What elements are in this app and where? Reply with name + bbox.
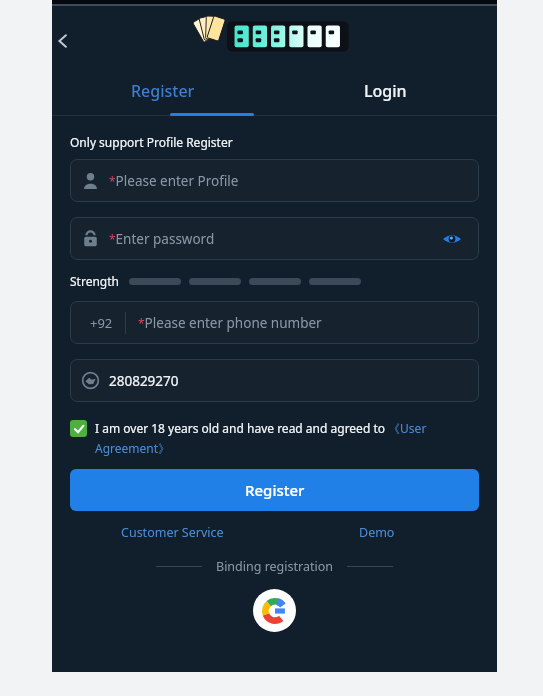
staticText: Customer Service: [121, 524, 224, 541]
staticText: Only support Profile Register: [70, 134, 233, 150]
button[interactable]: Customer Service: [70, 524, 274, 541]
staticText: +92: [90, 314, 113, 332]
button[interactable]: Show password: [437, 224, 467, 254]
staticText: 280829270: [109, 372, 179, 390]
button[interactable]: Back: [48, 26, 78, 56]
button[interactable]: 280829270: [70, 359, 479, 402]
staticText: *Enter password: [109, 230, 215, 248]
staticText: *Please enter phone number: [138, 314, 322, 332]
staticText: I am over 18 years old and have read and…: [95, 420, 479, 456]
button[interactable]: Register: [70, 469, 479, 511]
staticText: Login: [364, 80, 407, 102]
staticText: Register: [245, 480, 305, 500]
button[interactable]: I am over 18 years old and have read and…: [70, 420, 479, 456]
button[interactable]: *Enter password: [70, 217, 479, 260]
button[interactable]: +92: [70, 301, 479, 344]
button[interactable]: Register: [52, 68, 274, 114]
button[interactable]: *Please enter Profile: [70, 159, 479, 202]
button[interactable]: Demo: [274, 524, 479, 541]
staticText: Demo: [359, 524, 395, 541]
staticText: Binding registration: [216, 558, 333, 575]
staticText: Register: [131, 80, 195, 102]
staticText: Strength: [70, 273, 119, 289]
button[interactable]: Sign in with Google: [253, 589, 296, 632]
button[interactable]: Login: [274, 68, 497, 114]
staticText: *Please enter Profile: [109, 172, 239, 190]
